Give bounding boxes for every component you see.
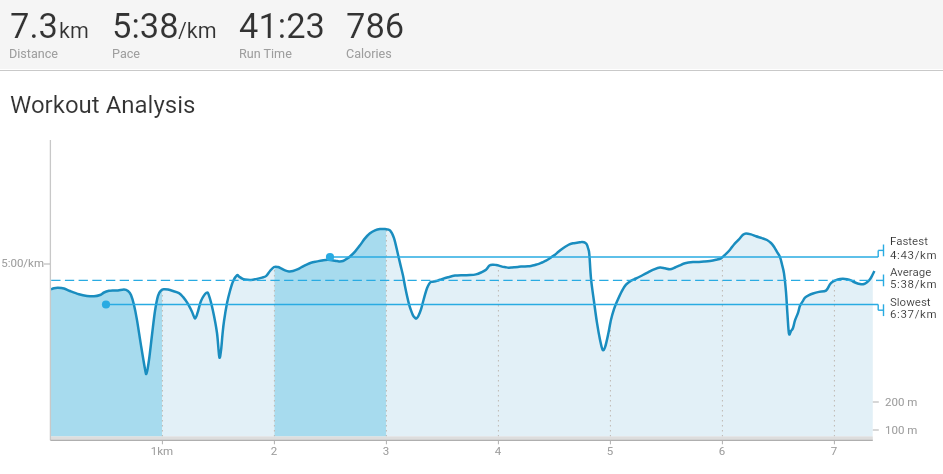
staticText: 6:37/km [890,307,938,320]
staticText: 7.3 [10,6,58,46]
staticText: 5:38/km [890,277,938,290]
staticText: 5:38 [112,6,179,46]
staticText: Fastest [890,234,928,247]
staticText: 1km [137,444,187,457]
staticText: km [59,18,89,43]
staticText: 5 [585,444,635,457]
staticText: 786 [346,6,405,46]
staticText: 4:43/km [890,248,938,261]
other: Pace and elevation chart [0,0,943,474]
button[interactable]: 7.3 [6,3,98,65]
staticText: 200 m [885,395,918,408]
staticText: 6 [697,444,747,457]
staticText: 7 [809,444,859,457]
staticText: Workout Analysis [10,91,196,119]
staticText: 3 [361,444,411,457]
staticText: Slowest [890,295,931,308]
staticText: /km [178,18,217,43]
staticText: 100 m [885,423,918,436]
staticText: 2 [249,444,299,457]
staticText: Pace [112,46,140,61]
staticText: 5:00/km [0,256,44,269]
staticText: Calories [346,46,392,61]
staticText: Run Time [239,46,292,61]
staticText: Average [890,265,932,278]
button[interactable]: 5:38 [108,3,224,65]
button[interactable]: 786 [342,3,412,65]
staticText: Distance [9,46,59,61]
button[interactable]: 41:23 [235,3,332,65]
staticText: 4 [473,444,523,457]
staticText: 41:23 [239,6,325,46]
